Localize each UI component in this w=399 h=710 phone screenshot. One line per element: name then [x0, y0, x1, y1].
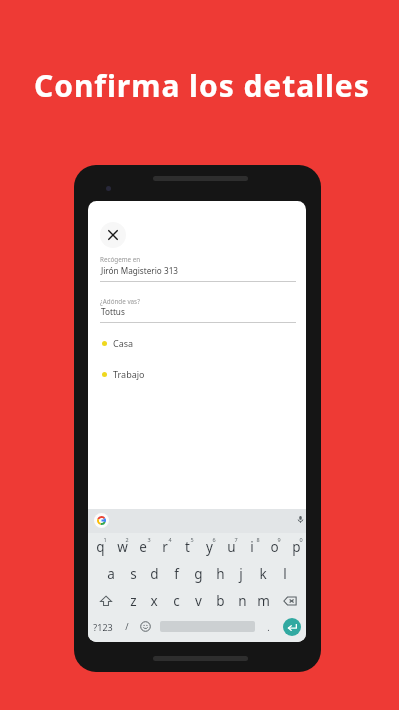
staticText: 8 [256, 536, 260, 543]
button[interactable]: g [188, 564, 208, 584]
button[interactable]: t [177, 537, 197, 557]
staticText: 7 [234, 536, 238, 543]
button[interactable]: ?123 [91, 619, 115, 635]
staticText: h [216, 565, 225, 583]
staticText: v [195, 592, 202, 610]
button[interactable]: Backspace [281, 592, 299, 610]
staticText: Tottus [101, 306, 125, 317]
button[interactable]: h [210, 564, 230, 584]
button[interactable]: x [144, 591, 164, 611]
staticText: 0 [299, 536, 303, 543]
staticText: e [139, 538, 147, 556]
staticText: y [206, 538, 213, 556]
button[interactable]: j [231, 564, 251, 584]
staticText: n [238, 592, 247, 610]
button[interactable]: v [188, 591, 208, 611]
staticText: k [259, 565, 267, 583]
staticText: x [150, 592, 158, 610]
button[interactable]: e [133, 537, 153, 557]
staticText: Recógeme en [100, 255, 141, 264]
button[interactable]: . [256, 619, 280, 635]
button[interactable]: Voice input [296, 515, 305, 524]
staticText: s [130, 565, 137, 583]
staticText: p [292, 538, 301, 556]
staticText: g [194, 565, 203, 583]
staticText: c [173, 592, 180, 610]
staticText: 5 [190, 536, 194, 543]
staticText: b [216, 592, 225, 610]
button[interactable]: / [115, 618, 139, 634]
staticText: 9 [277, 536, 281, 543]
button[interactable]: a [101, 564, 121, 584]
staticText: / [125, 620, 129, 632]
button[interactable]: b [210, 591, 230, 611]
button[interactable]: c [166, 591, 186, 611]
staticText: i [250, 538, 254, 556]
button[interactable]: Emoji [140, 621, 151, 632]
staticText: d [150, 565, 159, 583]
staticText: Jirón Magisterio 313 [101, 265, 178, 276]
staticText: Casa [113, 337, 134, 349]
button[interactable]: p [286, 537, 306, 557]
staticText: t [185, 538, 190, 556]
staticText: r [162, 538, 168, 556]
button[interactable]: i [242, 537, 262, 557]
button[interactable]: Shift [98, 593, 114, 609]
button[interactable]: Casa [88, 330, 306, 356]
button[interactable]: m [253, 591, 273, 611]
staticText: ¿Adónde vas? [100, 297, 140, 306]
button[interactable]: Google Search [94, 513, 109, 528]
button[interactable]: l [275, 564, 295, 584]
staticText: f [174, 565, 179, 583]
staticText: w [117, 538, 128, 556]
button[interactable]: s [123, 564, 143, 584]
button[interactable]: Close [100, 222, 126, 248]
staticText: a [107, 565, 115, 583]
button[interactable]: w [112, 537, 132, 557]
staticText: z [130, 592, 137, 610]
staticText: Confirma los detalles [34, 65, 370, 106]
staticText: Trabajo [113, 368, 145, 380]
button[interactable]: u [221, 537, 241, 557]
button[interactable]: q [90, 537, 110, 557]
button[interactable]: y [199, 537, 219, 557]
staticText: j [239, 565, 243, 583]
staticText: 2 [125, 536, 129, 543]
staticText: . [267, 621, 270, 633]
staticText: o [270, 538, 279, 556]
button[interactable]: z [123, 591, 143, 611]
button[interactable]: Trabajo [88, 361, 306, 387]
staticText: 3 [147, 536, 151, 543]
staticText: l [283, 565, 287, 583]
button[interactable]: o [264, 537, 284, 557]
button[interactable]: n [232, 591, 252, 611]
staticText: m [257, 592, 270, 610]
staticText: 6 [212, 536, 216, 543]
staticText: 1 [103, 536, 107, 543]
staticText: 4 [168, 536, 172, 543]
staticText: ?123 [93, 621, 113, 633]
button[interactable]: r [155, 537, 175, 557]
staticText: q [96, 538, 105, 556]
staticText: u [227, 538, 236, 556]
button[interactable]: f [166, 564, 186, 584]
button[interactable]: Enter [283, 618, 301, 636]
button[interactable]: d [144, 564, 164, 584]
button[interactable]: k [253, 564, 273, 584]
